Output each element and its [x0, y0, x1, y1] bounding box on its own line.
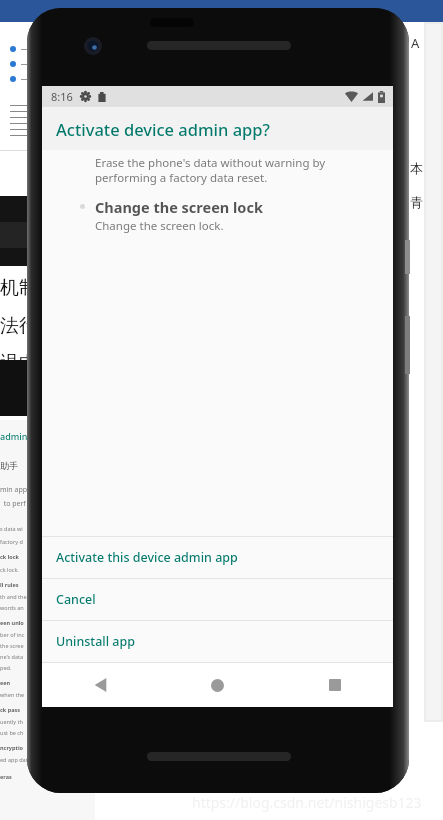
staticText: 本	[410, 160, 423, 176]
staticText: Activate device admin app?	[56, 118, 270, 140]
staticText: https://blog.csdn.net/nishigesb123	[192, 793, 422, 812]
staticText: ck pass	[0, 706, 20, 713]
staticText: een	[0, 679, 11, 686]
staticText: ck lock.	[0, 566, 19, 573]
staticText: Cancel	[56, 591, 96, 608]
staticText: to perf	[0, 499, 26, 509]
button[interactable]: Back	[42, 663, 159, 707]
staticText: ust be ch	[0, 729, 24, 736]
staticText: min app	[0, 485, 28, 495]
staticText: factory d	[0, 538, 23, 545]
staticText: words an	[0, 604, 24, 611]
staticText: s data wi	[0, 525, 23, 532]
staticText: ped.	[0, 664, 12, 671]
staticText: th and the	[0, 593, 27, 600]
staticText: uently th	[0, 718, 23, 725]
staticText: een unlo	[0, 619, 24, 626]
staticText: ber of inc	[0, 631, 25, 638]
staticText: 退申	[0, 352, 38, 376]
staticText: Change the screen lock.	[95, 218, 224, 233]
staticText: Change the screen lock	[95, 197, 263, 217]
button[interactable]: Home	[159, 663, 276, 707]
staticText: ed app data b	[0, 756, 36, 763]
staticText: when the	[0, 691, 25, 698]
button[interactable]: Cancel	[42, 579, 393, 620]
staticText: performing a factory data reset.	[95, 170, 268, 185]
staticText: Uninstall app	[56, 633, 135, 650]
staticText: the scree	[0, 642, 24, 649]
staticText: ck lock	[0, 553, 20, 560]
staticText: admin a	[0, 430, 35, 442]
button[interactable]: Activate this device admin app	[42, 537, 393, 578]
staticText: eras	[0, 773, 12, 780]
button[interactable]: Recent apps	[276, 663, 393, 707]
staticText: Activate this device admin app	[56, 549, 238, 566]
staticText: ll rules	[0, 581, 19, 588]
staticText: 8:16	[51, 89, 73, 104]
staticText: 助手	[0, 460, 18, 471]
staticText: ne's data	[0, 653, 24, 660]
button[interactable]: Uninstall app	[42, 621, 393, 662]
staticText: ncryptio	[0, 744, 23, 751]
staticText: 法行	[0, 314, 38, 338]
staticText: A	[411, 34, 420, 52]
staticText: 机制	[0, 276, 38, 300]
staticText: 青	[410, 194, 423, 210]
staticText: Erase the phone's data without warning b…	[95, 155, 326, 170]
